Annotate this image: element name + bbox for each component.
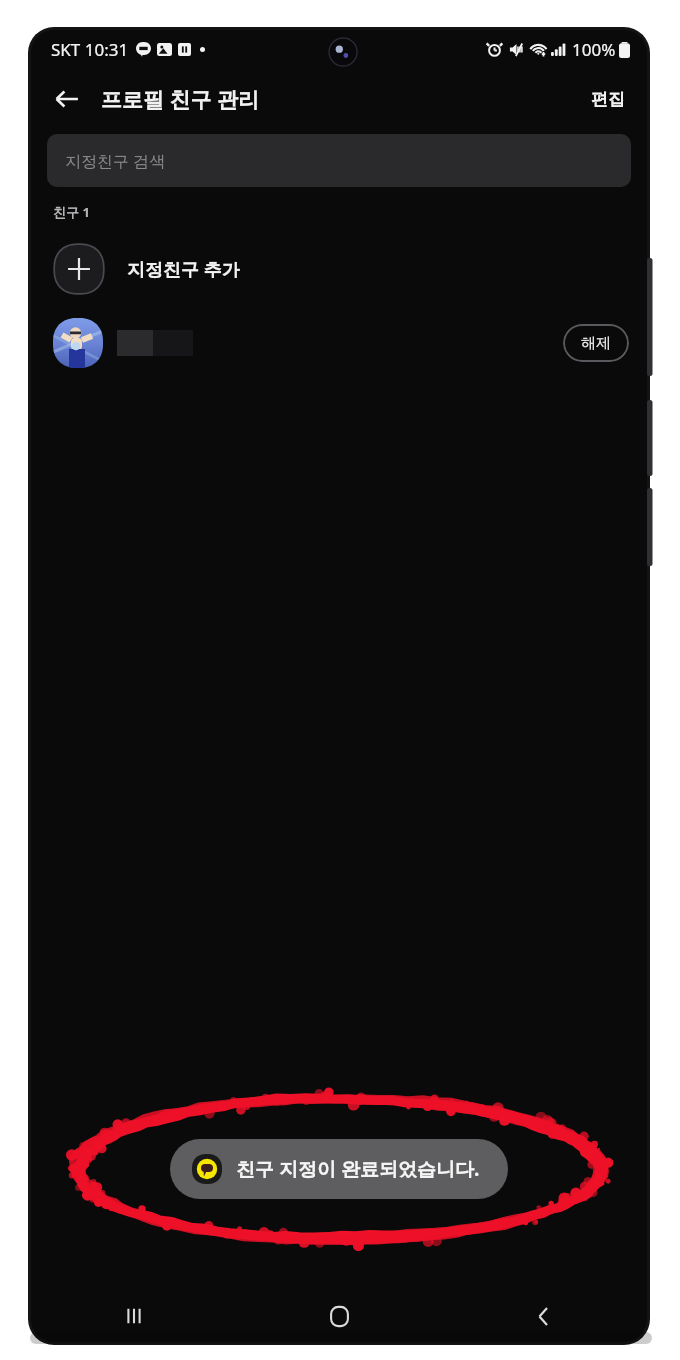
button[interactable]: Recents (31, 1290, 237, 1342)
staticText: 100% (572, 38, 616, 61)
button[interactable]: 지정친구 추가 (31, 231, 647, 307)
staticText: 지정친구 추가 (127, 257, 240, 282)
button[interactable]: Back (442, 1290, 647, 1342)
staticText: 지정친구 검색 (65, 150, 166, 172)
staticText: 프로필 친구 관리 (101, 85, 259, 114)
button[interactable]: 친구 지정이 완료되었습니다. (170, 1139, 508, 1199)
staticText: 편집 (591, 89, 625, 110)
staticText: 친구 1 (53, 203, 90, 221)
staticText: 해제 (581, 334, 611, 353)
button[interactable]: Back (43, 75, 91, 123)
staticText: SKT 10:31 (51, 38, 129, 61)
button[interactable]: 편집 (579, 81, 637, 118)
staticText: 친구 지정이 완료되었습니다. (236, 1156, 480, 1182)
button[interactable]: 해제 (563, 324, 629, 362)
button[interactable]: 해제 (31, 307, 647, 379)
button[interactable]: 지정친구 검색 (47, 134, 631, 187)
button[interactable]: Home (237, 1290, 442, 1342)
